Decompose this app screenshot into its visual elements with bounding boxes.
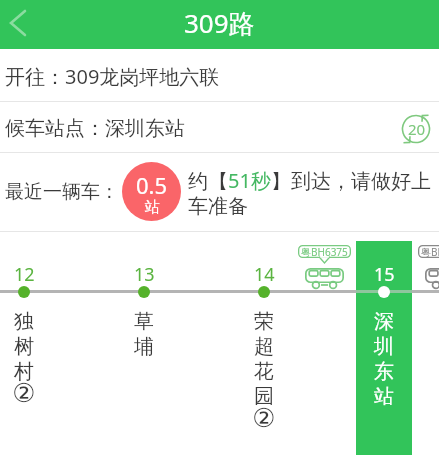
staticText: ② [12,378,36,403]
staticText: 粤BH6375 [301,245,348,258]
staticText: 深 [374,309,394,334]
staticText: 粤BH6375 [421,245,439,258]
staticText: 13 [134,262,155,287]
staticText: 15 [374,262,395,287]
staticText: 候车站点：深圳东站 [5,116,185,141]
staticText: 站 [145,198,160,217]
staticText: 最近一辆车： [5,180,119,204]
staticText: 】到达，请做好上 [271,169,431,194]
staticText: 站 [374,384,394,409]
staticText: 圳 [374,334,394,359]
staticText: 12 [14,262,35,287]
staticText: 车准备 [188,194,248,219]
staticText: 独 [14,309,34,334]
staticText: 村 [14,359,34,384]
staticText: 开往：309龙岗坪地六联 [5,63,220,90]
staticText: 超 [254,334,274,359]
button[interactable]: Refresh [398,111,434,147]
staticText: 14 [254,262,275,287]
staticText: 东 [374,359,394,384]
staticText: 园 [254,384,274,409]
staticText: 0.5 [136,170,168,200]
staticText: 埔 [134,334,154,359]
staticText: 树 [14,334,34,359]
staticText: 花 [254,359,274,384]
button[interactable]: Back [0,2,46,48]
staticText: 20 [408,119,426,139]
staticText: 草 [134,309,154,334]
staticText: 荣 [254,309,274,334]
staticText: ② [252,403,276,428]
staticText: 309路 [184,5,255,41]
staticText: 约【 [188,169,228,194]
staticText: 51秒 [228,167,271,194]
